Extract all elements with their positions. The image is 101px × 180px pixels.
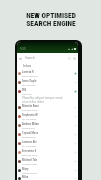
staticText: Tortoise Falls	[22, 162, 38, 165]
staticText: IRS	[22, 88, 27, 92]
other: Open navigation menu	[19, 57, 22, 60]
staticText: Pontificate	[22, 126, 35, 129]
button[interactable]: Mike	[17, 175, 78, 180]
staticText: Phasellus aliquet tempor ornat	[22, 96, 63, 100]
button[interactable]: Andrea Milan	[17, 121, 78, 130]
staticText: Lorenzo Alv	[22, 140, 37, 144]
button[interactable]: Open navigation menu	[17, 53, 78, 63]
staticText: An Est Pane	[22, 117, 36, 120]
staticText: Tortoise 2021	[22, 108, 38, 111]
staticText: NEW OPTIMISED	[26, 11, 76, 20]
button[interactable]: Crystal Moss	[17, 130, 78, 139]
staticText: Search	[25, 56, 35, 60]
staticText: Anniversary	[22, 135, 36, 138]
staticText: Andrea Milan	[22, 122, 39, 126]
staticText: Landmarked	[22, 171, 37, 174]
staticText: An Estimate	[22, 144, 36, 147]
other: Star	[74, 160, 77, 163]
staticText: Stephanie W	[22, 113, 38, 117]
button[interactable]: Phasellus aliquet tempor ornat	[17, 96, 78, 103]
button[interactable]: IRS	[17, 87, 78, 96]
button[interactable]: Ernestine S	[17, 148, 78, 157]
button[interactable]: Stephanie W	[17, 112, 78, 121]
button[interactable]: Michael Tob	[17, 157, 78, 166]
button[interactable]: Marcelo Baez	[17, 103, 78, 112]
button[interactable]: Loretta R	[17, 69, 78, 78]
other: Search	[68, 57, 71, 60]
staticText: Gone but not	[22, 74, 38, 77]
staticText: Irene Doyle	[22, 79, 37, 83]
staticText: ut ac tellus dolor	[22, 100, 44, 103]
staticText: Loretta R	[22, 70, 34, 74]
staticText: Ernestine S	[22, 149, 37, 153]
other: Star	[74, 106, 77, 109]
staticText: Marcelo Baez	[22, 104, 39, 108]
other: Star	[74, 90, 77, 93]
staticText: Tax docs	[22, 92, 33, 95]
other: Star	[74, 81, 77, 84]
other: Star	[74, 124, 77, 127]
staticText: Mary	[22, 167, 29, 171]
other: Star	[74, 142, 77, 145]
other: Star	[74, 72, 77, 75]
other: Star	[74, 115, 77, 118]
staticText: 9:30	[20, 47, 26, 51]
other: Star	[74, 133, 77, 136]
staticText: Michael Tob	[22, 158, 38, 162]
staticText: Mike	[22, 175, 29, 179]
staticText: Regatta Gom	[22, 153, 38, 156]
button[interactable]: Lorenzo Alv	[17, 139, 78, 148]
button[interactable]: Mary	[17, 166, 78, 175]
other: Star	[74, 151, 77, 154]
button[interactable]: Irene Doyle	[17, 78, 78, 87]
other: Account	[73, 57, 76, 60]
staticText: Inbox	[23, 64, 32, 68]
staticText: Crystal Moss	[22, 131, 39, 135]
other: Star	[74, 177, 77, 180]
staticText: SEARCH ENGINE	[26, 19, 76, 28]
other: Star	[74, 169, 77, 172]
staticText: RFP Annual	[22, 83, 36, 86]
